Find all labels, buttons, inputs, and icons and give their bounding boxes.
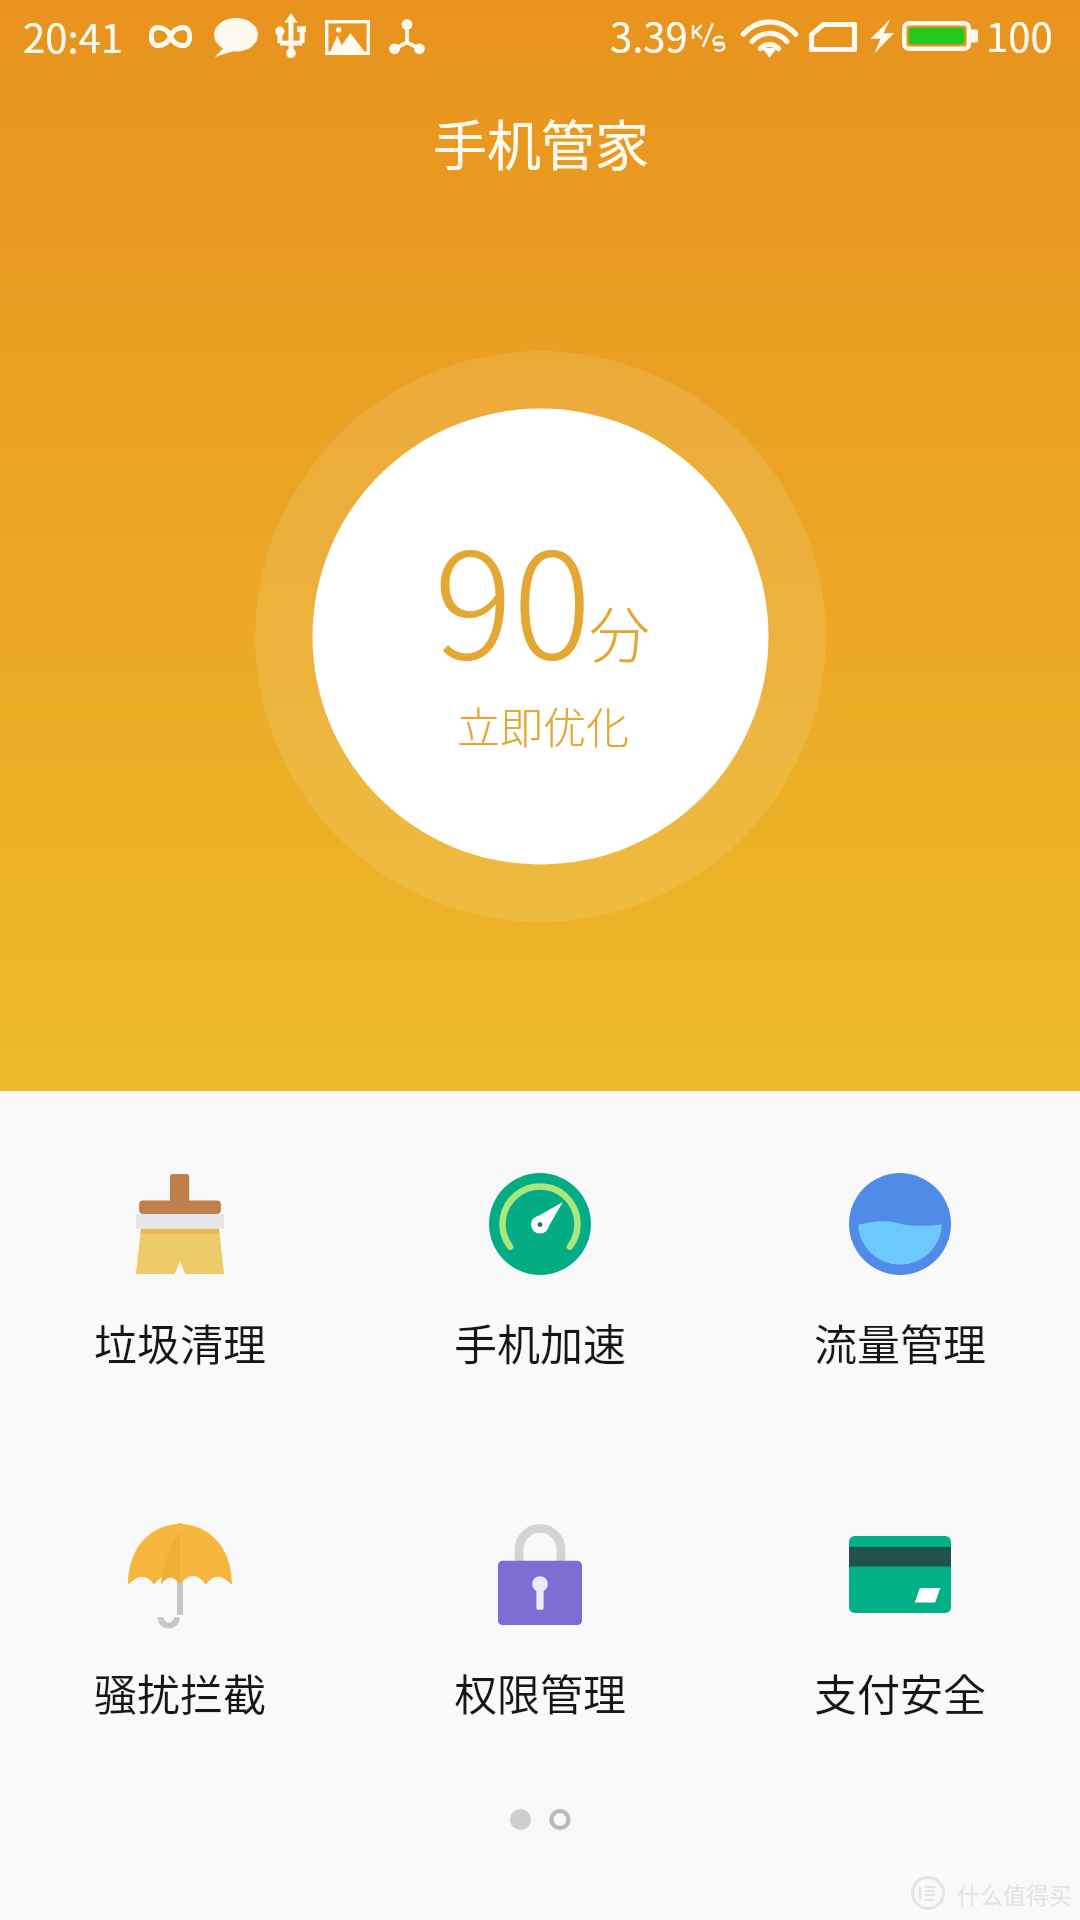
staticText: 流量管理 <box>814 1311 986 1373</box>
button[interactable]: 手机加速 <box>360 1124 720 1374</box>
staticText: 支付安全 <box>814 1661 986 1723</box>
button[interactable]: Page indicator <box>494 1795 586 1845</box>
staticText: 手机管家 <box>433 103 649 181</box>
staticText: 骚扰拦截 <box>94 1661 266 1723</box>
staticText: 垃圾清理 <box>94 1311 266 1373</box>
button[interactable]: 权限管理 <box>360 1474 720 1724</box>
staticText: 什么值得买 <box>957 1877 1072 1910</box>
staticText: 100 <box>986 6 1053 64</box>
staticText: 手机加速 <box>454 1311 626 1373</box>
staticText: 3.39 <box>610 6 688 64</box>
staticText: 20:41 <box>23 7 123 65</box>
staticText: 分 <box>589 587 651 675</box>
staticText: 90 <box>434 488 592 701</box>
button[interactable]: 骚扰拦截 <box>0 1474 360 1724</box>
staticText: 权限管理 <box>454 1661 626 1723</box>
button[interactable]: 支付安全 <box>720 1474 1080 1724</box>
button[interactable]: 垃圾清理 <box>0 1124 360 1374</box>
button[interactable]: 流量管理 <box>720 1124 1080 1374</box>
button[interactable]: 90 <box>255 351 826 922</box>
staticText: 立即优化 <box>457 694 629 756</box>
